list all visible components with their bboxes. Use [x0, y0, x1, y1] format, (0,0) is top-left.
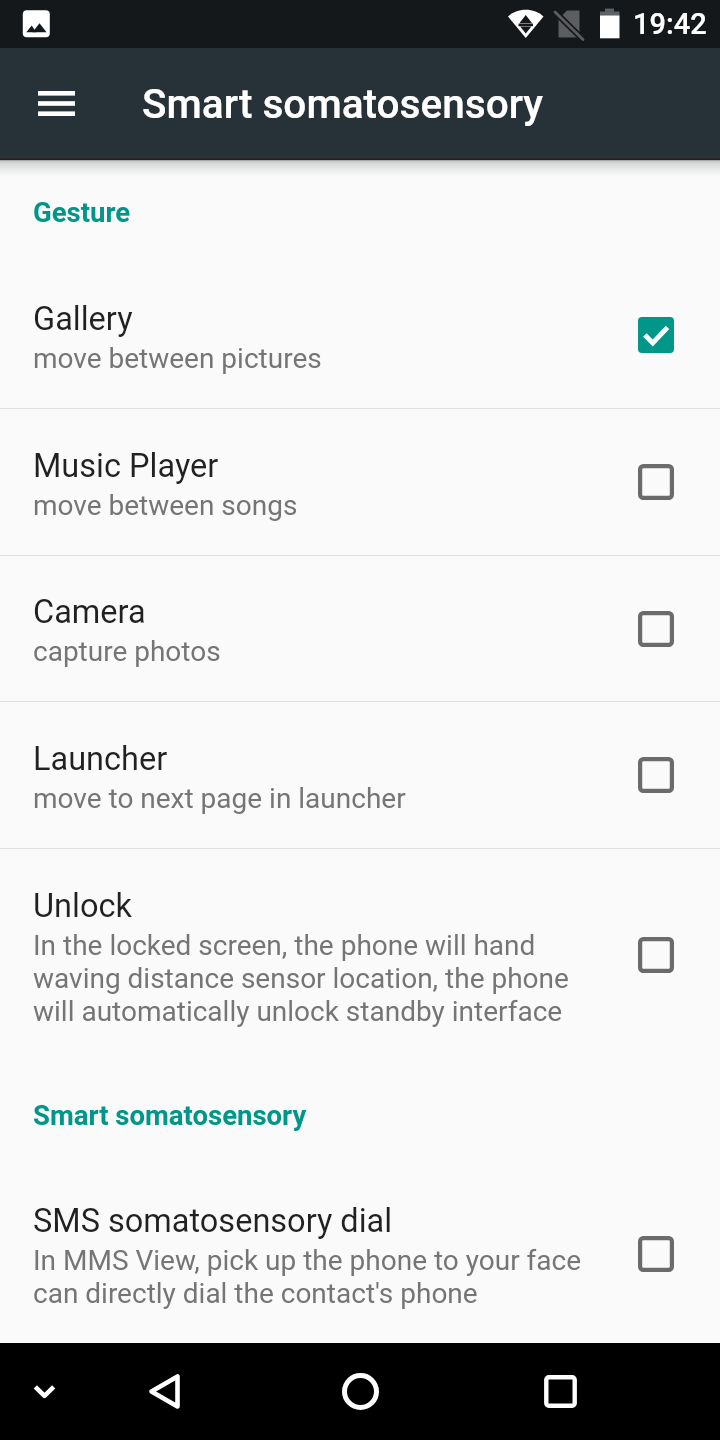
button[interactable]: Unlock — [0, 849, 720, 1061]
staticText: Music Player — [33, 447, 219, 485]
button[interactable]: Back — [116, 1343, 213, 1440]
button[interactable]: Disabled — [628, 747, 684, 803]
button[interactable]: Disabled — [628, 454, 684, 510]
button[interactable]: SMS somatosensory dial — [0, 1165, 720, 1343]
staticText: Smart somatosensory — [142, 80, 544, 127]
staticText: In MMS View, pick up the phone to your f… — [33, 1244, 582, 1310]
staticText: move between songs — [33, 489, 298, 522]
button[interactable]: Hide keyboard — [0, 1343, 93, 1440]
staticText: 19:42 — [633, 7, 707, 41]
button[interactable]: Launcher — [0, 702, 720, 848]
staticText: Unlock — [33, 887, 132, 925]
button[interactable]: Disabled — [628, 927, 684, 983]
staticText: move to next page in launcher — [33, 782, 406, 815]
staticText: Gallery — [33, 300, 133, 338]
button[interactable]: Gallery — [0, 262, 720, 408]
staticText: move between pictures — [33, 342, 322, 375]
button[interactable]: Home — [312, 1343, 409, 1440]
button[interactable]: Open navigation drawer — [0, 48, 112, 158]
staticText: Gesture — [33, 196, 131, 228]
staticText: Smart somatosensory — [33, 1099, 307, 1131]
staticText: SMS somatosensory dial — [33, 1202, 393, 1240]
button[interactable]: Camera — [0, 556, 720, 701]
button[interactable]: Music Player — [0, 409, 720, 555]
button[interactable]: Disabled — [628, 601, 684, 657]
button[interactable]: Recent apps — [512, 1343, 609, 1440]
staticText: capture photos — [33, 635, 221, 668]
button[interactable]: Enabled — [628, 307, 684, 363]
staticText: Camera — [33, 593, 146, 631]
staticText: Launcher — [33, 740, 168, 778]
staticText: In the locked screen, the phone will han… — [33, 929, 569, 1028]
button[interactable]: Disabled — [628, 1226, 684, 1282]
